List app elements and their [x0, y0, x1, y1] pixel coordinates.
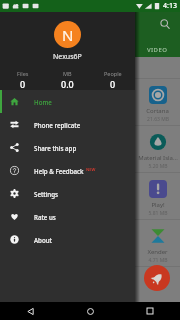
- staticText: About: [34, 236, 52, 244]
- staticText: N: [62, 25, 74, 45]
- staticText: NEW: [86, 167, 96, 172]
- staticText: 0.0: [61, 78, 74, 90]
- staticText: People: [104, 70, 122, 77]
- staticText: 0: [20, 78, 26, 90]
- button[interactable]: Phone replicate: [0, 113, 135, 136]
- staticText: 5.81 MB: [148, 210, 168, 217]
- button[interactable]: Rate us: [0, 205, 135, 228]
- staticText: Rate us: [34, 213, 56, 221]
- staticText: MB: [63, 70, 72, 77]
- staticText: 21.63 MB: [147, 116, 169, 123]
- button[interactable]: Cortana: [135, 79, 180, 125]
- staticText: 4:13: [163, 1, 177, 11]
- staticText: 4.71 MB: [148, 257, 168, 264]
- button[interactable]: Home: [0, 90, 135, 113]
- button[interactable]: Play!: [135, 173, 180, 219]
- button[interactable]: Material Isla...: [45, 126, 90, 172]
- button[interactable]: Settings: [0, 182, 135, 205]
- staticText: 5.81 MB: [13, 210, 33, 217]
- button[interactable]: Material Isla...: [0, 126, 45, 172]
- button[interactable]: Help & Feedback: [0, 159, 135, 182]
- staticText: Material Isla...: [138, 154, 178, 162]
- button[interactable]: About: [0, 228, 135, 251]
- button[interactable]: Xender: [0, 220, 45, 266]
- staticText: Xender: [147, 248, 168, 256]
- staticText: Home: [34, 98, 52, 106]
- button[interactable]: Xender: [135, 220, 180, 266]
- staticText: Share this app: [34, 144, 77, 152]
- button[interactable]: Home: [60, 302, 120, 320]
- button[interactable]: Xender: [45, 220, 90, 266]
- button[interactable]: Cortana: [0, 79, 45, 125]
- staticText: 4:13: [163, 1, 177, 11]
- staticText: 5.20 MB: [148, 163, 168, 170]
- button[interactable]: Share this app: [0, 136, 135, 159]
- button[interactable]: Material Isla...: [90, 126, 135, 172]
- staticText: 5.20 MB: [58, 163, 78, 170]
- staticText: 5.20 MB: [13, 163, 33, 170]
- button[interactable]: Play!: [45, 173, 90, 219]
- staticText: 21.63 MB: [12, 116, 34, 123]
- staticText: VIDEO: [147, 46, 168, 54]
- staticText: Play!: [151, 201, 165, 209]
- staticText: Help & Feedback: [34, 167, 84, 175]
- staticText: Settings: [34, 190, 59, 198]
- button[interactable]: N: [54, 21, 81, 48]
- staticText: 0: [110, 78, 116, 90]
- staticText: Files: [17, 70, 29, 77]
- button[interactable]: Recents: [120, 302, 180, 320]
- button[interactable]: VIDEO: [134, 43, 180, 57]
- button[interactable]: Play!: [0, 173, 45, 219]
- staticText: Phone replicate: [34, 121, 81, 129]
- staticText: Cortana: [146, 107, 169, 115]
- button[interactable]: Boost: [144, 265, 170, 291]
- button[interactable]: Back: [0, 302, 60, 320]
- staticText: Nexus6P: [53, 52, 82, 62]
- button[interactable]: Material Isla...: [135, 126, 180, 172]
- button[interactable]: Cortana: [45, 79, 90, 125]
- button[interactable]: Cortana: [90, 79, 135, 125]
- button[interactable]: Search: [158, 17, 172, 31]
